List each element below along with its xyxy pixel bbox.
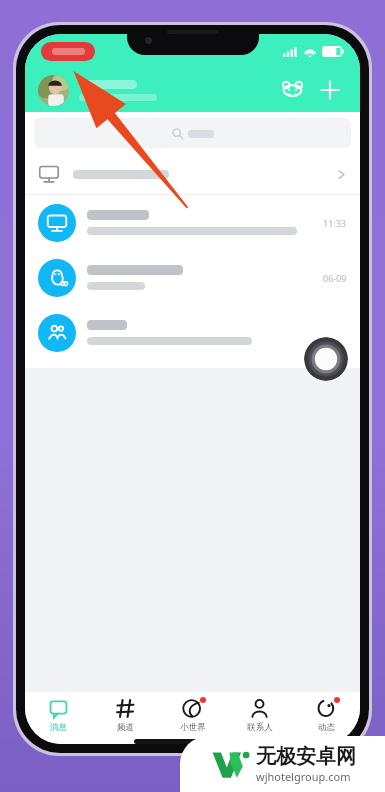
staticText: 06-09 [323, 272, 347, 284]
button[interactable] [25, 305, 360, 360]
button[interactable]: 06-09 [25, 250, 360, 305]
button[interactable]: Assistive touch [304, 337, 348, 381]
staticText: 11:33 [323, 217, 347, 229]
staticText: 消息 [50, 722, 67, 733]
button[interactable]: 11:33 [25, 195, 360, 250]
button[interactable]: 联系人 [226, 692, 293, 744]
staticText: wjhotelgroup.com [256, 769, 351, 784]
staticText: 动态 [318, 722, 335, 733]
button[interactable]: 动态 [293, 692, 360, 744]
button[interactable] [25, 154, 360, 194]
button[interactable]: Profile [38, 75, 69, 106]
staticText: 频道 [117, 722, 134, 733]
button[interactable]: Add [313, 73, 347, 107]
button[interactable]: 消息 [25, 692, 92, 744]
button[interactable]: 频道 [92, 692, 159, 744]
button[interactable]: QQ Pet [275, 73, 309, 107]
button[interactable]: Search [34, 118, 351, 148]
button[interactable]: 小世界 [159, 692, 226, 744]
staticText: 无极安卓网 [256, 744, 356, 769]
staticText: 联系人 [247, 722, 273, 733]
staticText: 小世界 [180, 722, 206, 733]
